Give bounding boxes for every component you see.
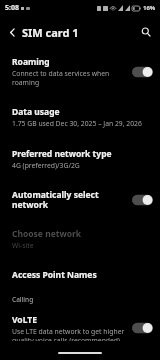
staticText: Data usage (12, 106, 60, 118)
staticText: Choose network (12, 228, 82, 240)
staticText: 1.75 GB used Dec 30, 2025 – Jan 29, 2026 (12, 119, 142, 128)
button[interactable]: On (131, 321, 154, 335)
staticText: Calling (12, 295, 34, 304)
staticText: 5:08 (5, 3, 19, 13)
staticText: Connect to data services when roaming (12, 69, 128, 87)
staticText: Roaming (12, 56, 50, 68)
staticText: VoLTE (12, 314, 37, 326)
staticText: 16% (143, 4, 156, 12)
button[interactable]: Automatically select network (0, 184, 160, 215)
button[interactable]: Access Point Names (0, 264, 160, 286)
button[interactable]: Choose network (0, 223, 160, 255)
button[interactable]: Preferred network type (0, 143, 160, 175)
staticText: 4G (preferred)/3G/2G (12, 161, 80, 170)
staticText: Wi-site (12, 241, 34, 250)
button[interactable]: Search (137, 23, 155, 41)
button[interactable]: VoLTE (0, 309, 160, 346)
button[interactable]: On (131, 193, 154, 207)
staticText: Use LTE data network to get higher quali… (12, 327, 128, 341)
staticText: Preferred network type (12, 148, 112, 160)
staticText: Automatically select network (12, 189, 128, 210)
staticText: Access Point Names (12, 269, 97, 281)
button[interactable]: Roaming (0, 51, 160, 92)
button[interactable]: Data usage (0, 101, 160, 133)
button[interactable]: Navigate up (3, 23, 21, 41)
button[interactable]: On (131, 65, 154, 79)
staticText: SIM card 1 (22, 25, 79, 40)
